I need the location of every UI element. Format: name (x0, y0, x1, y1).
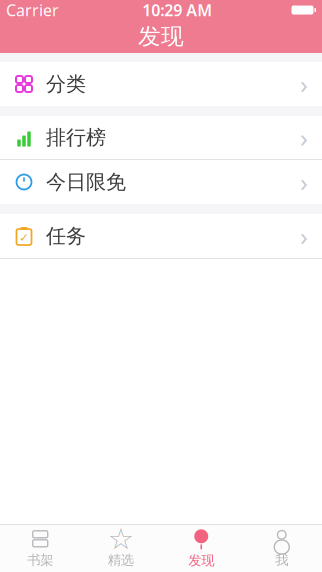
button[interactable]: ☆ (80, 525, 161, 572)
button[interactable]: 排行榜 (0, 116, 322, 160)
button[interactable]: 发现 (161, 525, 241, 572)
button[interactable]: 书架 (0, 525, 80, 572)
staticText: ✓ (19, 231, 29, 244)
staticText: › (300, 219, 308, 253)
button[interactable]: 分类 (0, 62, 322, 106)
staticText: 任务 (46, 224, 86, 248)
staticText: 发现 (138, 23, 184, 50)
button[interactable]: 今日限免 (0, 160, 322, 204)
staticText: 精选 (108, 552, 134, 568)
staticText: 排行榜 (46, 125, 106, 150)
staticText: 发现 (188, 552, 214, 569)
button[interactable]: 我 (241, 525, 322, 572)
staticText: 10:29 AM (142, 0, 212, 21)
staticText: › (300, 165, 308, 199)
staticText: › (300, 121, 308, 154)
staticText: 分类 (46, 72, 86, 96)
staticText: Carrier (6, 0, 59, 21)
staticText: 书架 (27, 552, 53, 568)
staticText: 我 (275, 552, 288, 568)
button[interactable]: ✓ (0, 214, 322, 258)
staticText: 今日限免 (46, 170, 126, 194)
staticText: ☆ (108, 522, 134, 555)
staticText: › (300, 67, 308, 101)
